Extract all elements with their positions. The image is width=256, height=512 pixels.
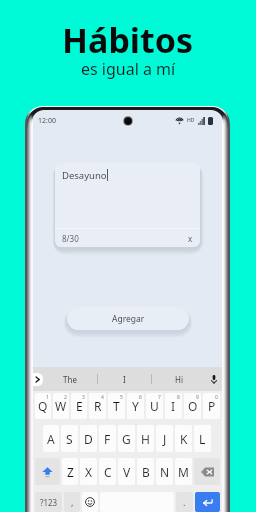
staticText: 7	[158, 394, 161, 401]
button[interactable]: X	[80, 458, 97, 485]
staticText: U	[150, 398, 159, 414]
staticText: P	[208, 398, 216, 414]
staticText: B	[142, 464, 150, 480]
button[interactable]: J	[156, 425, 173, 452]
button[interactable]: G	[118, 425, 135, 452]
staticText: I	[123, 374, 126, 385]
staticText: E	[76, 398, 83, 414]
staticText: M	[178, 464, 189, 480]
staticText: L	[199, 431, 206, 447]
staticText: 9	[196, 394, 199, 401]
staticText: 12:00	[38, 116, 56, 126]
staticText: Hi	[175, 374, 183, 385]
staticText: H	[141, 431, 150, 447]
button[interactable]: ?123	[35, 492, 62, 512]
staticText: X	[85, 464, 93, 480]
staticText: R	[94, 398, 102, 414]
staticText: 8/30	[62, 233, 79, 244]
staticText: Hábitos	[62, 17, 194, 63]
staticText: 4	[101, 394, 104, 401]
button[interactable]: Enter	[195, 492, 220, 512]
staticText: 1	[46, 394, 49, 401]
staticText: 2	[64, 394, 67, 401]
button[interactable]: Emoji	[82, 492, 98, 512]
button[interactable]: Voice input	[205, 367, 223, 391]
button[interactable]: I	[165, 393, 182, 419]
staticText: 5	[120, 394, 123, 401]
staticText: Desayuno	[62, 169, 107, 182]
button[interactable]: T	[108, 393, 125, 419]
button[interactable]: M	[175, 458, 192, 485]
button[interactable]: R	[89, 393, 106, 419]
staticText: A	[47, 431, 55, 447]
staticText: O	[188, 398, 198, 414]
button[interactable]: Z	[62, 458, 78, 485]
button[interactable]: F	[99, 425, 116, 452]
staticText: 6	[139, 394, 142, 401]
staticText: T	[113, 398, 120, 414]
staticText: .	[183, 496, 186, 508]
staticText: es igual a mí	[81, 58, 176, 80]
staticText: Y	[132, 398, 139, 414]
button[interactable]: .	[176, 492, 193, 512]
staticText: 8	[177, 394, 180, 401]
staticText: Q	[38, 398, 48, 414]
button[interactable]: N	[156, 458, 173, 485]
staticText: V	[123, 464, 131, 480]
button[interactable]: U	[146, 393, 163, 419]
button[interactable]: Q	[35, 393, 51, 419]
button[interactable]: W	[53, 393, 69, 419]
button[interactable]: ,	[64, 492, 80, 512]
staticText: G	[122, 431, 131, 447]
staticText: Z	[67, 464, 74, 480]
staticText: W	[55, 398, 67, 414]
button[interactable]: H	[137, 425, 154, 452]
button[interactable]: V	[118, 458, 135, 485]
button[interactable]: Desayuno	[55, 163, 200, 247]
staticText: D	[84, 431, 93, 447]
button[interactable]: C	[99, 458, 116, 485]
button[interactable]: Backspace	[194, 458, 220, 485]
staticText: 3	[82, 394, 85, 401]
staticText: C	[104, 464, 112, 480]
button[interactable]: Hi	[152, 367, 205, 391]
staticText: 0	[215, 394, 218, 401]
button[interactable]: I	[98, 367, 151, 391]
button[interactable]: P	[203, 393, 220, 419]
staticText: I	[171, 398, 176, 414]
staticText: HD	[187, 117, 195, 124]
staticText: ,	[71, 496, 74, 508]
button[interactable]: D	[80, 425, 97, 452]
staticText: Agregar	[112, 313, 145, 325]
button[interactable]: More suggestions	[32, 373, 43, 386]
button[interactable]: Shift	[35, 458, 60, 485]
button[interactable]: A	[43, 425, 59, 452]
staticText: The	[63, 374, 77, 385]
button[interactable]: O	[184, 393, 201, 419]
staticText: J	[163, 431, 167, 447]
staticText: F	[104, 431, 111, 447]
staticText: N	[160, 464, 170, 480]
button[interactable]: Agregar	[67, 307, 189, 330]
staticText: x	[188, 233, 193, 244]
button[interactable]: The	[43, 367, 97, 391]
staticText: S	[66, 431, 73, 447]
button[interactable]: E	[71, 393, 87, 419]
button[interactable]: K	[175, 425, 192, 452]
staticText: ?123	[40, 497, 58, 508]
button[interactable]: B	[137, 458, 154, 485]
button[interactable]: L	[194, 425, 211, 452]
button[interactable]: Y	[127, 393, 144, 419]
staticText: K	[180, 431, 188, 447]
button[interactable]: S	[61, 425, 78, 452]
